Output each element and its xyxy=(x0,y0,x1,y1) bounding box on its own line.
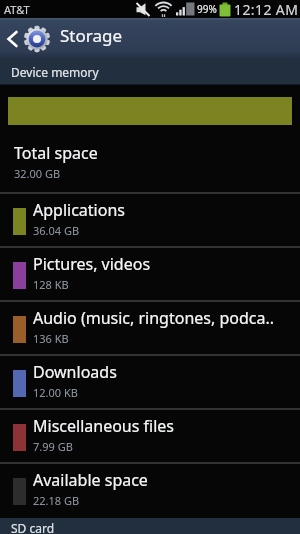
button[interactable]: Storage xyxy=(0,18,123,59)
staticText: Available space xyxy=(33,469,148,491)
button[interactable]: Applications xyxy=(0,194,300,248)
staticText: Pictures, videos xyxy=(33,253,151,275)
staticText: Downloads xyxy=(33,361,117,383)
staticText: AT&T xyxy=(4,2,30,17)
staticText: 7.99 GB xyxy=(33,439,73,454)
staticText: Audio (music, ringtones, podca.. xyxy=(33,307,275,329)
staticText: 36.04 GB xyxy=(33,223,80,238)
staticText: 32.00 GB xyxy=(14,166,61,181)
staticText: Device memory xyxy=(11,64,99,80)
button[interactable]: Available space xyxy=(0,464,300,518)
staticText: Miscellaneous files xyxy=(33,415,174,437)
button[interactable]: Audio (music, ringtones, podca.. xyxy=(0,302,300,356)
staticText: 12.00 KB xyxy=(33,385,78,400)
button[interactable]: Pictures, videos xyxy=(0,248,300,302)
staticText: 136 KB xyxy=(33,331,69,346)
staticText: 22.18 GB xyxy=(33,493,80,508)
button[interactable]: Downloads xyxy=(0,356,300,410)
staticText: 99% xyxy=(197,2,217,16)
staticText: SD card xyxy=(11,520,55,534)
staticText: 12:12 AM xyxy=(234,0,299,18)
staticText: Total space xyxy=(14,142,98,164)
staticText: Storage xyxy=(60,24,123,47)
button[interactable]: Miscellaneous files xyxy=(0,410,300,464)
staticText: 128 KB xyxy=(33,277,69,292)
staticText: Applications xyxy=(33,199,125,221)
button[interactable]: Total space xyxy=(0,142,300,181)
